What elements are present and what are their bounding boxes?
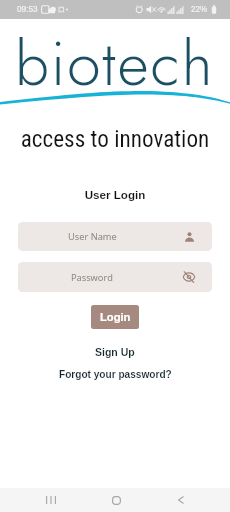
button[interactable]: Login [91, 305, 139, 329]
staticText: Sign Up [95, 346, 135, 358]
staticText: biotech [15, 20, 215, 108]
button[interactable]: Back [158, 488, 204, 512]
staticText: 22% [191, 5, 208, 14]
other: Show password [183, 271, 195, 283]
button[interactable]: Recent apps [28, 488, 73, 512]
button[interactable]: Sign Up [0, 344, 230, 359]
staticText: User Name [68, 230, 117, 243]
button[interactable]: Home [93, 488, 139, 512]
staticText: Forgot your password? [59, 369, 172, 380]
staticText: 09:53 [17, 5, 38, 14]
staticText: Login [100, 311, 131, 324]
staticText: Password [71, 271, 113, 284]
button[interactable]: Forgot your password? [0, 367, 230, 382]
staticText: User Login [0, 188, 230, 201]
staticText: access to innovation [0, 125, 230, 152]
other: User name [185, 232, 194, 242]
button[interactable]: Password [18, 262, 212, 292]
button[interactable]: User Name [18, 222, 212, 251]
